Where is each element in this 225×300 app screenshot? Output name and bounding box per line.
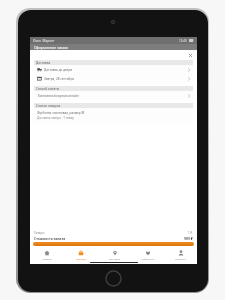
staticText: Завтра, 28 сентября: [44, 77, 75, 81]
staticText: Главная: [42, 257, 52, 260]
staticText: Ozon Маркет: [33, 39, 55, 43]
button[interactable]: Доставка: [98, 248, 131, 261]
staticText: Оформление заказа: [34, 45, 68, 50]
staticText: 12:45: [179, 39, 187, 43]
button[interactable]: Главная: [30, 248, 64, 261]
staticText: Избранное: [141, 257, 155, 260]
staticText: Доставка завтра · 1 товар: [37, 116, 75, 120]
button[interactable]: Завтра, 28 сентября: [34, 74, 193, 83]
staticText: Банковской картой онлайн: [38, 94, 79, 98]
staticText: 1 ₽: [188, 231, 193, 235]
button[interactable]: Close: [187, 52, 193, 58]
staticText: Доставка: [109, 257, 121, 260]
button[interactable]: Банковской картой онлайн: [34, 91, 193, 100]
button[interactable]: Футболка хлопковая, размер M: [34, 108, 193, 123]
staticText: Список товаров: [36, 104, 61, 108]
staticText: 989 ₽: [184, 236, 193, 241]
staticText: Корзина: [76, 257, 87, 260]
button[interactable]: Доставка до двери: [34, 65, 193, 74]
staticText: Футболка хлопковая, размер M: [37, 111, 85, 115]
button[interactable]: Корзина: [64, 248, 98, 261]
staticText: Профиль: [175, 257, 187, 260]
staticText: Доставка: [36, 61, 51, 65]
staticText: Доставка до двери: [44, 68, 73, 72]
button[interactable]: Избранное: [131, 248, 164, 261]
button[interactable]: Оформить заказ: [33, 242, 194, 246]
staticText: Товары: [34, 231, 45, 235]
staticText: Способ оплаты: [36, 87, 60, 91]
staticText: Стоимость заказа: [34, 236, 66, 241]
button[interactable]: Профиль: [164, 248, 197, 261]
